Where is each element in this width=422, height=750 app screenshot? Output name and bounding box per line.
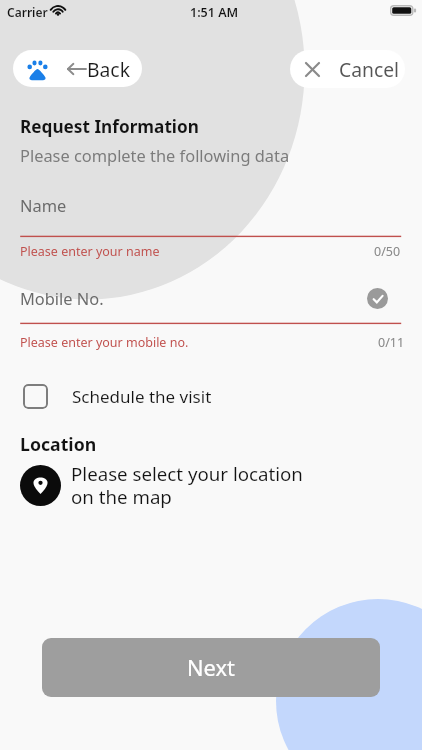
staticText: Back [87,56,130,82]
button[interactable]: App logo [13,50,142,87]
other: Select location on map [32,477,49,494]
staticText: 0/50 [374,243,401,260]
button[interactable]: Schedule the visit checkbox [23,380,212,412]
staticText: Schedule the visit [72,385,212,408]
staticText: 0/11 [378,334,405,351]
staticText: Location [20,432,97,456]
button[interactable]: Next [42,638,380,697]
staticText: Cancel [339,56,400,82]
staticText: Please enter your mobile no. [20,334,189,351]
staticText: Next [187,653,235,683]
staticText: Name [20,194,67,216]
staticText: Request Information [20,115,199,138]
other: Schedule the visit checkbox [23,384,48,409]
staticText: 1:51 AM [190,4,239,21]
staticText: Please complete the following data [20,144,290,166]
staticText: Mobile No. [20,287,104,309]
other: Valid [367,288,388,309]
button[interactable]: Select location on map [20,461,303,510]
button[interactable]: Close [290,50,405,88]
other: App logo [27,60,48,81]
staticText: Carrier [7,4,48,20]
other: Close [306,63,319,76]
staticText: Please select your location on the map [71,461,303,510]
staticText: Please enter your name [20,243,160,260]
